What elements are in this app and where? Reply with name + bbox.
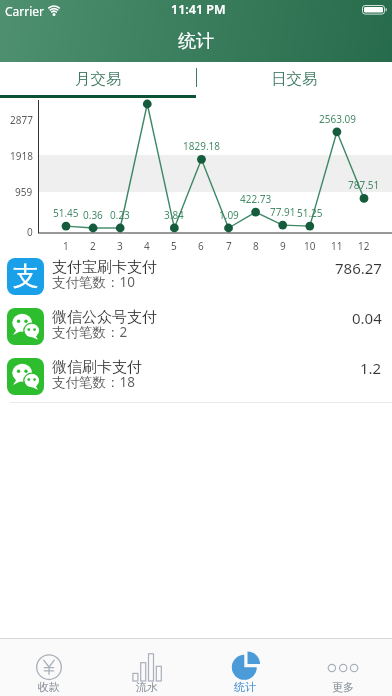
staticText: 月交易 <box>75 69 122 89</box>
staticText: Carrier <box>5 3 45 19</box>
staticText: 6 <box>198 239 204 253</box>
staticText: 1918 <box>10 149 33 163</box>
button[interactable]: 收款 <box>0 638 98 696</box>
button[interactable]: 更多 <box>294 638 392 696</box>
staticText: 微信刷卡支付 <box>52 358 142 377</box>
staticText: 支付笔数：2 <box>52 323 128 341</box>
staticText: 支 <box>13 260 39 293</box>
staticText: 422.73 <box>240 192 272 206</box>
staticText: 支付宝刷卡支付 <box>52 258 157 277</box>
staticText: 10 <box>304 239 316 253</box>
button[interactable]: 月交易 <box>0 62 196 98</box>
staticText: 0.23 <box>110 208 130 222</box>
button[interactable]: 统计 <box>196 638 294 696</box>
staticText: 7 <box>226 239 232 253</box>
staticText: 收款 <box>38 680 60 694</box>
staticText: 51.45 <box>53 206 79 220</box>
staticText: 787.51 <box>348 178 380 192</box>
staticText: 2877 <box>10 113 33 127</box>
staticText: 1 <box>63 239 69 253</box>
staticText: 0 <box>27 225 33 239</box>
button[interactable]: 流水 <box>98 638 196 696</box>
staticText: 支付笔数：10 <box>52 273 135 291</box>
staticText: 支付笔数：18 <box>52 373 135 391</box>
button[interactable]: 微信刷卡支付 <box>0 352 392 402</box>
button[interactable]: 微信公众号支付 <box>0 302 392 352</box>
staticText: 微信公众号支付 <box>52 308 157 327</box>
staticText: 1.2 <box>360 358 382 378</box>
staticText: 1.09 <box>219 208 239 222</box>
staticText: 786.27 <box>335 258 382 278</box>
staticText: 4 <box>144 239 150 253</box>
staticText: 更多 <box>332 680 354 694</box>
staticText: 9 <box>280 239 286 253</box>
staticText: 11:41 PM <box>171 1 226 18</box>
staticText: 2 <box>90 239 96 253</box>
button[interactable]: 支 <box>0 252 392 302</box>
staticText: 12 <box>358 239 370 253</box>
staticText: 流水 <box>136 680 158 694</box>
staticText: 3 <box>117 239 123 253</box>
staticText: 0.36 <box>83 208 103 222</box>
staticText: 51.25 <box>297 206 323 220</box>
staticText: 8 <box>253 239 259 253</box>
staticText: 11 <box>331 239 343 253</box>
staticText: 959 <box>15 185 33 199</box>
staticText: 3.84 <box>164 208 184 222</box>
button[interactable]: 日交易 <box>196 62 392 98</box>
staticText: 0.04 <box>352 308 382 328</box>
staticText: 2563.09 <box>319 112 356 126</box>
staticText: 77.91 <box>270 205 296 219</box>
staticText: 统计 <box>234 680 256 694</box>
staticText: 日交易 <box>271 69 318 89</box>
staticText: 统计 <box>178 30 214 53</box>
staticText: 1829.18 <box>183 139 220 153</box>
staticText: 5 <box>171 239 177 253</box>
